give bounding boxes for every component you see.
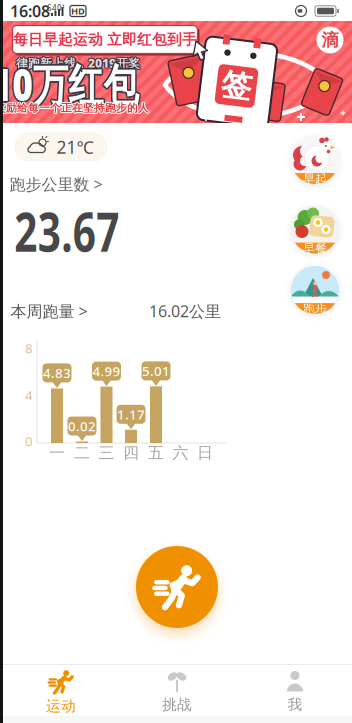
button[interactable]: 跑步 [291, 266, 339, 314]
staticText: 奖励给每一个正在坚持跑步的人 [0, 101, 150, 114]
staticText: 五 [148, 443, 164, 463]
staticText: 奖励给每一个正在坚持跑步的人 [0, 102, 149, 115]
staticText: 一 [49, 443, 65, 463]
staticText: 10万红包 [0, 53, 158, 112]
button[interactable]: 挑战 [127, 668, 227, 716]
staticText: 10万红包 [0, 55, 155, 113]
staticText: 10万红包 [0, 56, 156, 114]
staticText: 4.99 [92, 362, 120, 380]
staticText: 10万红包 [0, 56, 158, 114]
button[interactable]: 我 [245, 668, 345, 716]
staticText: 本周跑量 > [10, 300, 87, 322]
staticText: 滴 [321, 29, 338, 51]
staticText: 奖励给每一个正在坚持跑步的人 [0, 101, 148, 114]
staticText: 律跑新上线，2019开奖 [15, 54, 139, 70]
staticText: 挑战 [162, 695, 192, 713]
staticText: 640¹ [47, 3, 65, 13]
staticText: 四 [123, 443, 139, 463]
staticText: 每日早起运动 立即红包到手 [13, 30, 197, 48]
staticText: 4.83 [43, 364, 71, 382]
staticText: 10万红包 [0, 55, 159, 113]
staticText: 跑步公里数 > [9, 173, 102, 195]
staticText: 奖励给每一个正在坚持跑步的人 [0, 102, 148, 115]
staticText: 21℃ [56, 135, 93, 158]
staticText: 奖励给每一个正在坚持跑步的人 [0, 101, 148, 114]
staticText: 律跑新上线，2019开奖 [16, 54, 140, 70]
staticText: 奖励给每一个正在坚持跑步的人 [0, 101, 149, 114]
staticText: 运动 [46, 697, 76, 715]
staticText: 10万红包 [0, 53, 157, 111]
button[interactable]: 开始跑步 [136, 546, 218, 628]
staticText: 奖励给每一个正在坚持跑步的人 [0, 102, 150, 115]
staticText: 奖励给每一个正在坚持跑步的人 [0, 101, 150, 114]
staticText: 律跑新上线，2019开奖 [17, 54, 141, 70]
staticText: 早餐 [303, 241, 327, 256]
staticText: HD [71, 5, 85, 17]
staticText: 律跑新上线，2019开奖 [15, 56, 139, 72]
staticText: 10万红包 [0, 53, 156, 112]
staticText: 律跑新上线，2019开奖 [17, 55, 141, 71]
staticText: 16:08 [10, 0, 50, 22]
staticText: 奖励给每一个正在坚持跑步的人 [0, 100, 149, 114]
staticText: 律跑新上线，2019开奖 [16, 55, 140, 71]
staticText: 4 [25, 386, 33, 404]
button[interactable]: 运动 [11, 668, 111, 716]
staticText: 日 [197, 443, 213, 463]
staticText: 早起 [303, 172, 327, 186]
staticText: 签 [221, 67, 252, 105]
staticText: 8 [25, 339, 33, 357]
staticText: 5.01 [142, 362, 170, 380]
staticText: 我 [287, 695, 302, 713]
staticText: 律跑新上线，2019开奖 [16, 56, 140, 72]
staticText: 三 [98, 443, 114, 463]
staticText: 10万红包 [0, 57, 157, 115]
button[interactable]: 早餐 [291, 205, 339, 253]
staticText: 律跑新上线，2019开奖 [15, 55, 139, 71]
staticText: 六 [172, 443, 188, 463]
staticText: 16.02公里 [149, 300, 221, 322]
button[interactable]: 早起 [291, 136, 339, 184]
staticText: 二 [74, 443, 90, 463]
staticText: 1.17 [117, 405, 145, 423]
button[interactable]: 本周跑量 > [10, 300, 87, 322]
staticText: 10万红包 [0, 55, 157, 113]
staticText: 23.67 [0, 196, 136, 266]
staticText: 律跑新上线，2019开奖 [17, 56, 141, 72]
button[interactable]: 跑步公里数 > [9, 173, 102, 195]
button[interactable]: 每日早起运动 立即红包到手 [12, 25, 197, 53]
staticText: 跑步 [303, 302, 327, 316]
staticText: 0 [25, 432, 33, 450]
staticText: 0.02 [68, 417, 96, 435]
